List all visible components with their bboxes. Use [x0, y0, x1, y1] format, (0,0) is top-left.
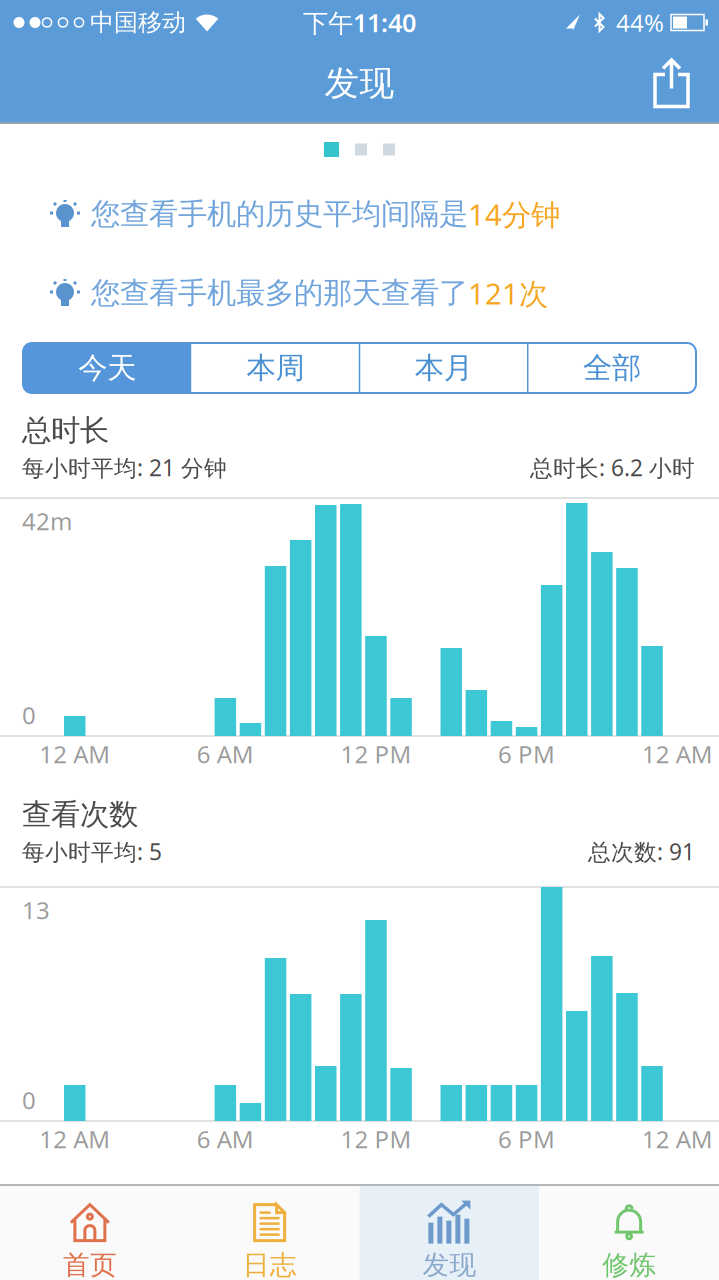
staticText: 12 PM: [340, 738, 411, 770]
staticText: 您查看手机最多的那天查看了: [91, 275, 468, 311]
staticText: 42m: [22, 505, 72, 537]
staticText: 全部: [583, 350, 641, 386]
staticText: 13: [22, 894, 50, 926]
button[interactable]: 发现: [359, 1186, 539, 1280]
staticText: 发现: [324, 62, 394, 105]
staticText: 6 PM: [498, 1123, 555, 1155]
staticText: 中国移动: [90, 8, 186, 37]
staticText: 查看次数: [22, 796, 138, 832]
staticText: 121次: [468, 273, 548, 312]
staticText: 日志: [243, 1249, 297, 1280]
staticText: 首页: [63, 1249, 117, 1280]
staticText: 总次数: 91: [588, 836, 695, 866]
staticText: 14分钟: [468, 194, 560, 233]
staticText: 您查看手机的历史平均间隔是: [91, 196, 468, 232]
staticText: 每小时平均: 21 分钟: [22, 452, 227, 482]
button[interactable]: 本月: [359, 343, 528, 393]
staticText: 12 AM: [39, 738, 110, 770]
button[interactable]: 今天: [23, 343, 191, 393]
button[interactable]: 日志: [180, 1186, 360, 1280]
staticText: 0: [22, 699, 36, 731]
button[interactable]: 修炼: [539, 1186, 719, 1280]
staticText: 总时长: [22, 412, 109, 448]
staticText: 6 AM: [197, 738, 254, 770]
button[interactable]: [635, 59, 719, 107]
staticText: 本周: [246, 350, 304, 386]
staticText: 发现: [422, 1249, 476, 1280]
staticText: 6 AM: [197, 1123, 254, 1155]
staticText: 12 AM: [642, 738, 713, 770]
staticText: 44%: [616, 7, 664, 38]
staticText: 本月: [415, 350, 473, 386]
staticText: 今天: [78, 350, 136, 386]
staticText: 12 PM: [340, 1123, 411, 1155]
button[interactable]: 首页: [0, 1186, 180, 1280]
button[interactable]: 全部: [528, 343, 696, 393]
staticText: 6 PM: [498, 738, 555, 770]
staticText: 0: [22, 1084, 36, 1116]
staticText: 总时长: 6.2 小时: [530, 452, 695, 482]
staticText: 每小时平均: 5: [22, 836, 162, 866]
staticText: 修炼: [602, 1249, 656, 1280]
staticText: 下午11:40: [303, 6, 416, 39]
staticText: 12 AM: [642, 1123, 713, 1155]
button[interactable]: 本周: [191, 343, 359, 393]
staticText: 12 AM: [39, 1123, 110, 1155]
